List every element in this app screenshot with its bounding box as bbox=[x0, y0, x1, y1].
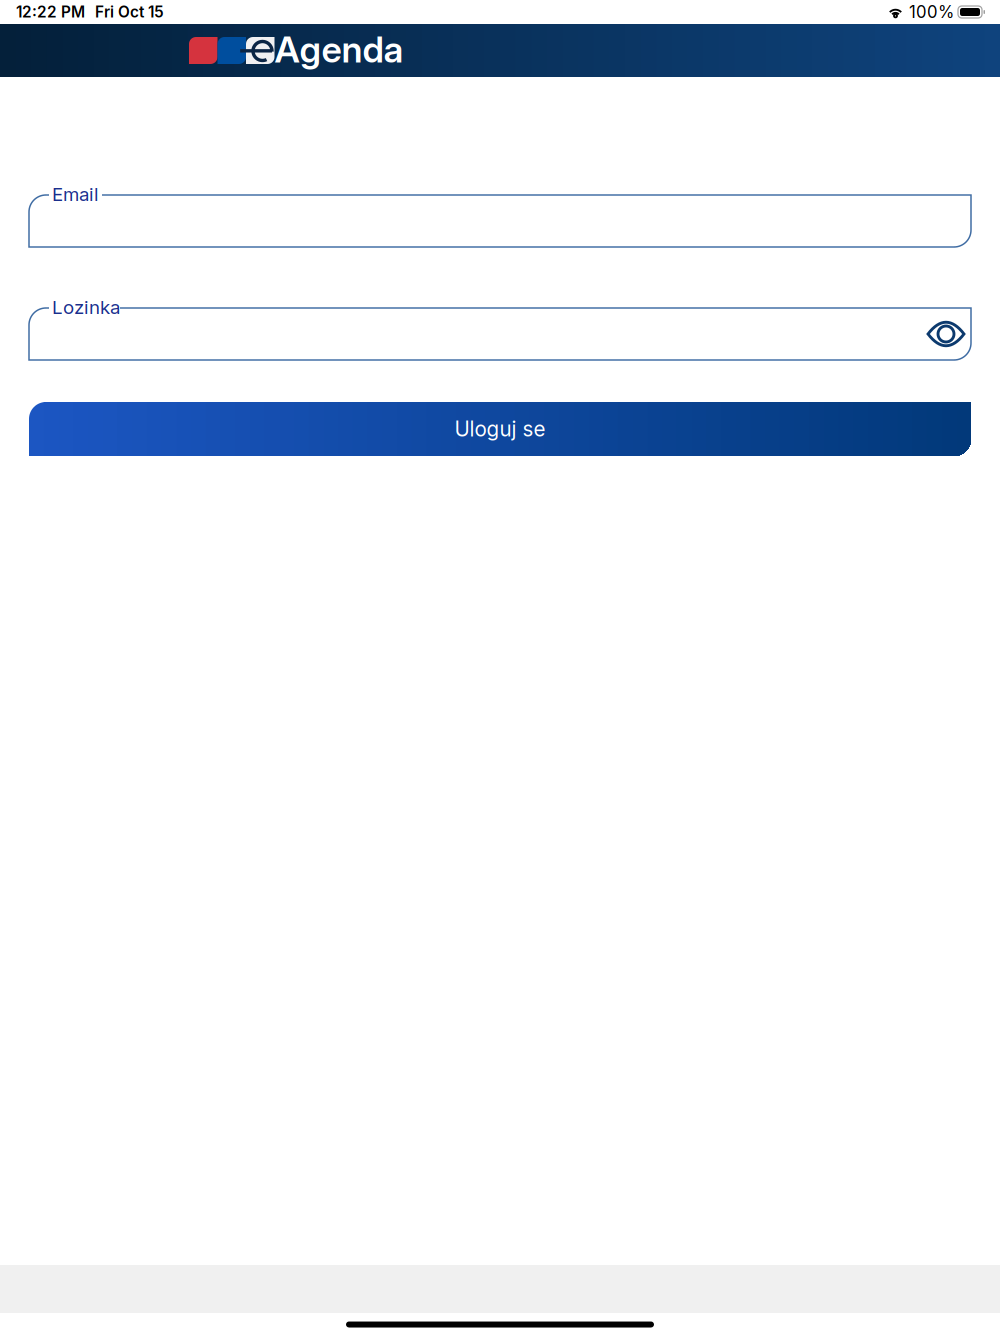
button[interactable]: Email bbox=[29, 195, 971, 247]
button[interactable]: Lozinka bbox=[29, 308, 971, 360]
staticText: Lozinka bbox=[52, 296, 120, 319]
staticText: 100% bbox=[909, 2, 954, 22]
button[interactable]: Show password bbox=[922, 308, 970, 360]
staticText: 12:22 PM bbox=[16, 3, 85, 21]
staticText: Uloguj se bbox=[454, 416, 545, 441]
staticText: Fri Oct 15 bbox=[95, 3, 164, 21]
staticText: Email bbox=[52, 183, 99, 206]
button[interactable]: Uloguj se bbox=[29, 402, 971, 456]
staticText: Agenda bbox=[274, 28, 403, 71]
